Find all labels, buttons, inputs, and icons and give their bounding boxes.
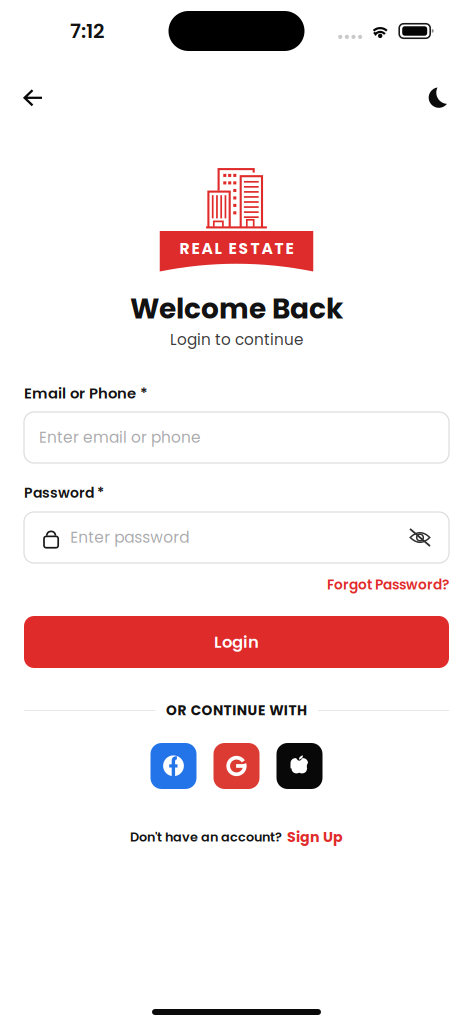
button[interactable]: Sign Up (287, 827, 343, 847)
button[interactable]: Toggle dark mode (417, 76, 473, 120)
button[interactable]: Continue with Facebook (150, 743, 196, 789)
staticText: REAL ESTATE (179, 238, 293, 259)
staticText: OR CONTINUE WITH (166, 701, 307, 720)
staticText: Forgot Password? (327, 575, 449, 594)
staticText: Email or Phone * (24, 383, 148, 404)
button[interactable]: Continue with Apple (276, 743, 322, 789)
button[interactable]: Continue with Google (213, 743, 259, 789)
staticText: Enter password (70, 527, 189, 548)
staticText: Welcome Back (130, 289, 343, 328)
staticText: Enter email or phone (39, 427, 201, 448)
button[interactable]: Forgot Password? (327, 575, 449, 594)
button[interactable]: Login (24, 616, 449, 668)
staticText: 7:12 (70, 17, 104, 45)
button[interactable]: Show password (399, 516, 449, 558)
staticText: Don't have an account? (130, 828, 282, 846)
staticText: Password * (24, 483, 104, 503)
staticText: Login to continue (170, 329, 303, 350)
button[interactable]: Back (0, 76, 55, 120)
staticText: Login (214, 630, 259, 653)
staticText: Sign Up (287, 827, 343, 847)
